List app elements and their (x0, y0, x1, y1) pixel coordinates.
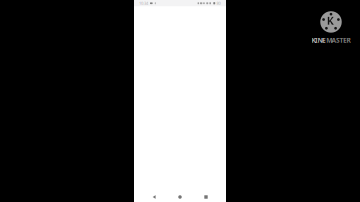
staticText: KINE (312, 36, 326, 45)
staticText: 80 (216, 1, 220, 6)
button[interactable]: Back (144, 192, 164, 202)
button[interactable]: Home (170, 192, 190, 202)
staticText: 10:34 (139, 1, 148, 6)
staticText: MASTER (326, 36, 350, 45)
button[interactable]: Recent apps (196, 192, 216, 202)
